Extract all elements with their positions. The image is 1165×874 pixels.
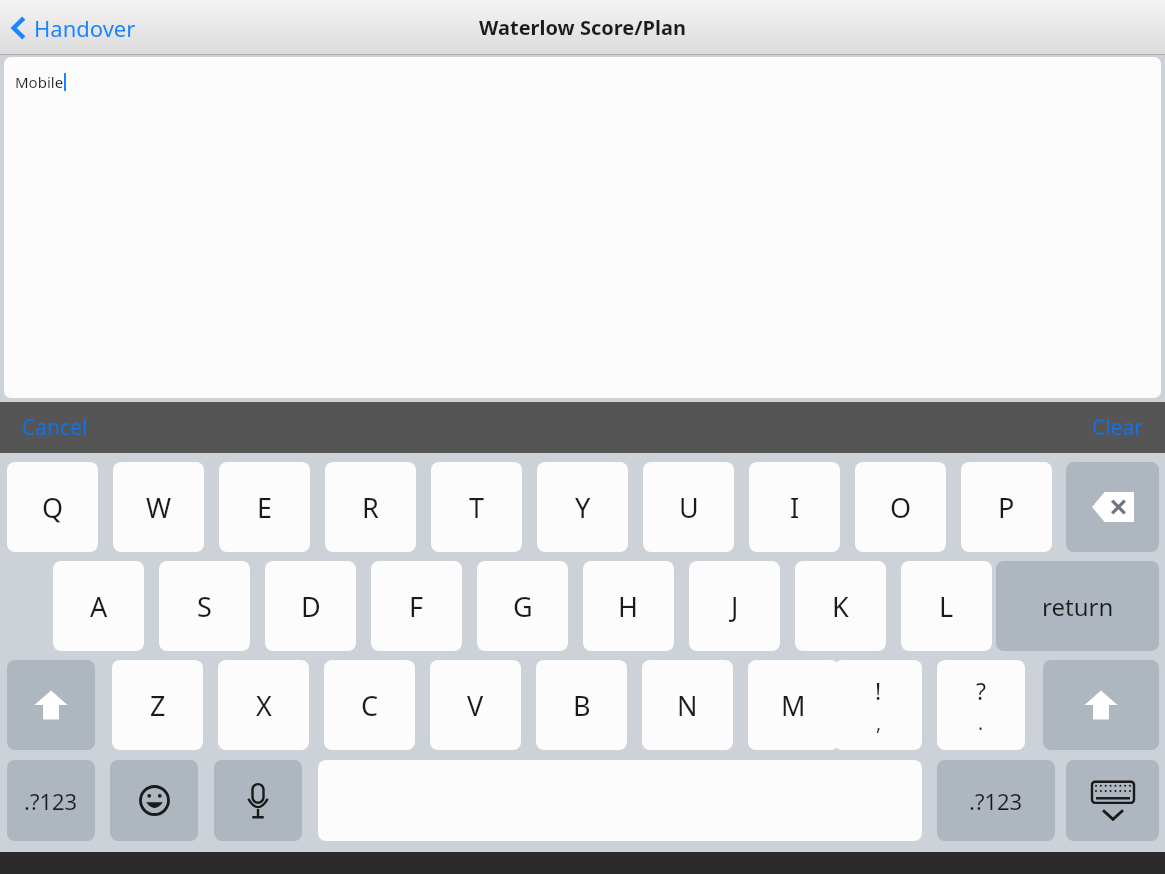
staticText: Clear (1092, 413, 1143, 442)
staticText: G (513, 588, 533, 625)
button[interactable]: E (219, 462, 310, 552)
button[interactable]: Hide keyboard (1066, 760, 1159, 841)
staticText: . (978, 710, 984, 736)
button[interactable]: T (431, 462, 522, 552)
staticText: Waterlow Score/Plan (479, 14, 686, 41)
button[interactable]: Z (112, 660, 203, 750)
button[interactable]: X (218, 660, 309, 750)
button[interactable]: Handover (0, 0, 154, 55)
button[interactable]: A (53, 561, 144, 651)
staticText: .?123 (969, 786, 1023, 816)
staticText: C (361, 687, 379, 724)
staticText: V (467, 687, 484, 724)
button[interactable]: H (583, 561, 674, 651)
staticText: B (573, 687, 591, 724)
button[interactable]: R (325, 462, 416, 552)
button[interactable]: M (748, 660, 839, 750)
staticText: Mobile (15, 72, 64, 92)
button[interactable]: Q (7, 462, 98, 552)
staticText: .?123 (24, 786, 78, 816)
button[interactable]: Dictation (214, 760, 302, 841)
button[interactable]: S (159, 561, 250, 651)
button[interactable]: Clear (1070, 402, 1165, 453)
button[interactable]: O (855, 462, 946, 552)
staticText: E (257, 489, 273, 526)
button[interactable]: B (536, 660, 627, 750)
staticText: Handover (34, 13, 136, 43)
staticText: , (876, 710, 882, 736)
staticText: ! (875, 675, 882, 706)
button[interactable]: J (689, 561, 780, 651)
staticText: J (731, 588, 739, 625)
staticText: L (939, 588, 954, 625)
button[interactable]: K (795, 561, 886, 651)
staticText: T (469, 489, 485, 526)
button[interactable]: P (961, 462, 1052, 552)
staticText: return (1042, 590, 1114, 623)
button[interactable]: return (996, 561, 1159, 651)
button[interactable]: N (642, 660, 733, 750)
button[interactable]: V (430, 660, 521, 750)
button[interactable]: D (265, 561, 356, 651)
staticText: Cancel (22, 413, 88, 442)
button[interactable]: .?123 (7, 760, 95, 841)
button[interactable]: L (901, 561, 992, 651)
button[interactable]: Shift (7, 660, 95, 750)
button[interactable]: F (371, 561, 462, 651)
staticText: Z (150, 687, 166, 724)
staticText: H (618, 588, 639, 625)
staticText: K (832, 588, 849, 625)
staticText: R (362, 489, 379, 526)
button[interactable]: Cancel (0, 402, 110, 453)
staticText: I (790, 489, 800, 526)
button[interactable]: W (113, 462, 204, 552)
staticText: S (197, 588, 212, 625)
button[interactable]: Shift (1043, 660, 1159, 750)
staticText: N (677, 687, 698, 724)
button[interactable]: ? (937, 660, 1025, 750)
button[interactable]: G (477, 561, 568, 651)
staticText: F (409, 588, 424, 625)
staticText: D (301, 588, 321, 625)
button[interactable]: ! (834, 660, 922, 750)
staticText: X (256, 687, 272, 724)
staticText: ? (976, 675, 986, 706)
staticText: Q (42, 489, 64, 526)
staticText: P (998, 489, 1015, 526)
staticText: M (781, 687, 806, 724)
staticText: W (146, 489, 172, 526)
button[interactable]: U (643, 462, 734, 552)
button[interactable]: Emoji (110, 760, 198, 841)
button[interactable]: Y (537, 462, 628, 552)
staticText: Y (575, 489, 591, 526)
staticText: U (679, 489, 699, 526)
staticText: A (90, 588, 108, 625)
button[interactable]: .?123 (937, 760, 1055, 841)
button[interactable]: I (749, 462, 840, 552)
button[interactable]: C (324, 660, 415, 750)
staticText: O (890, 489, 912, 526)
button[interactable]: Backspace (1066, 462, 1159, 552)
button[interactable]: Mobile (4, 57, 1161, 398)
